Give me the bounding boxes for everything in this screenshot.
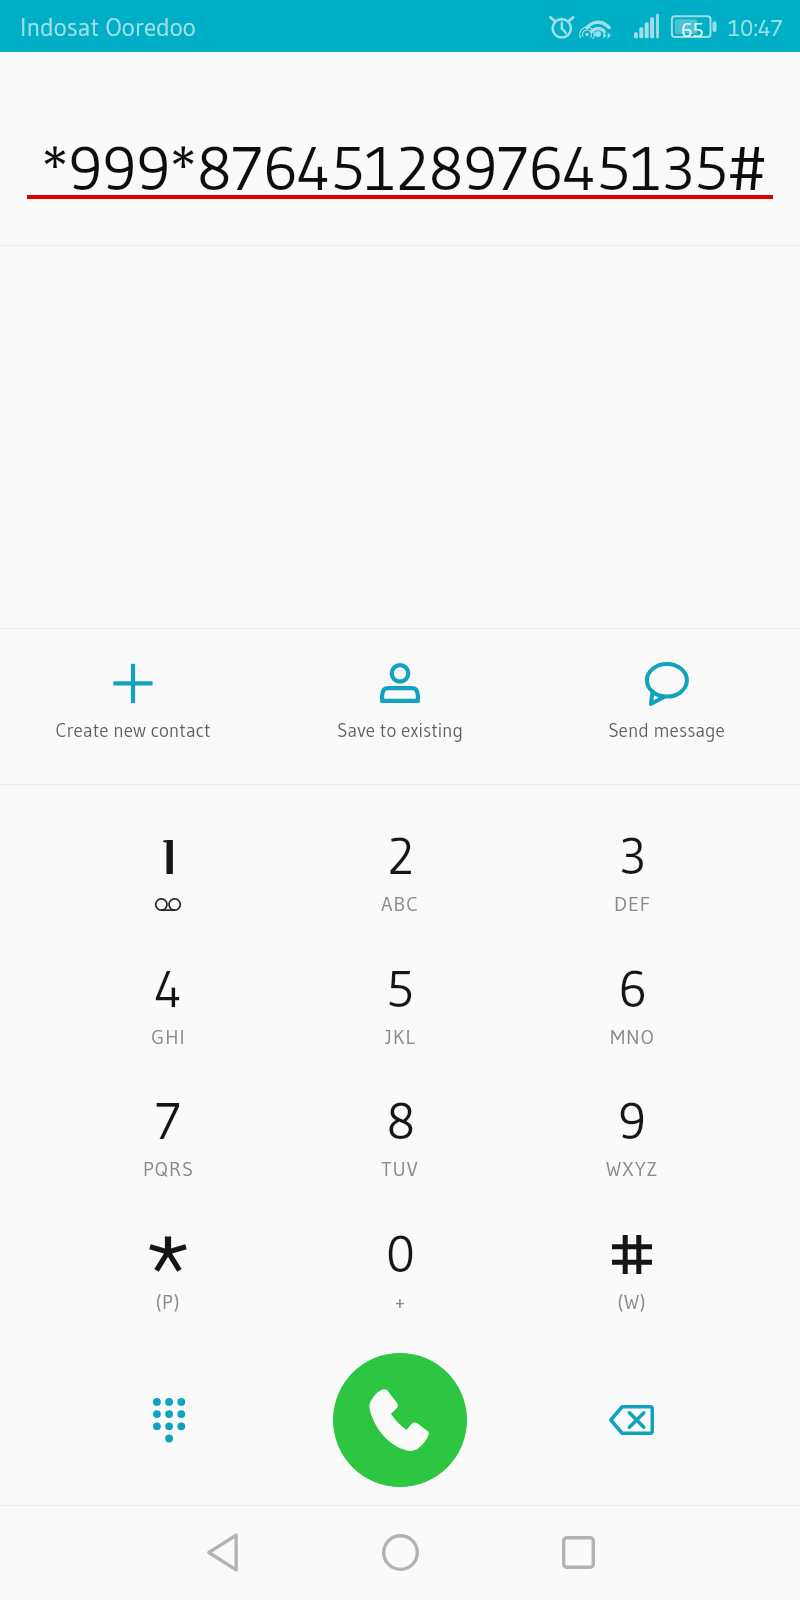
staticText: DEF <box>614 892 651 917</box>
button[interactable]: 2 <box>284 815 516 941</box>
staticText: 9 <box>618 1090 646 1152</box>
staticText: *999*8764512897645135# <box>42 131 766 206</box>
staticText: 4 <box>155 958 182 1020</box>
button[interactable]: Back <box>187 1517 257 1587</box>
button[interactable]: 4 <box>52 948 284 1074</box>
staticText: Send message <box>608 719 725 742</box>
button[interactable]: 6 <box>516 948 748 1074</box>
button[interactable]: (P) <box>52 1213 284 1339</box>
button[interactable]: 0 <box>284 1213 516 1339</box>
button[interactable]: 8 <box>284 1080 516 1206</box>
button[interactable]: 7 <box>52 1080 284 1206</box>
staticText: 2 <box>387 825 414 887</box>
staticText: Save to existing <box>337 719 463 742</box>
staticText: JKL <box>385 1025 416 1050</box>
button[interactable]: 5 <box>284 948 516 1074</box>
staticText: (P) <box>155 1290 181 1315</box>
staticText: MNO <box>610 1025 655 1050</box>
staticText: TUV <box>381 1157 419 1182</box>
staticText: WXYZ <box>606 1157 658 1182</box>
button[interactable]: (W) <box>516 1213 748 1339</box>
staticText: (W) <box>617 1290 647 1315</box>
staticText: GHI <box>151 1025 186 1050</box>
staticText: ABC <box>381 892 419 917</box>
staticText: 7 <box>155 1090 181 1152</box>
staticText: + <box>395 1290 406 1315</box>
staticText: 3 <box>619 825 646 887</box>
button[interactable]: Send message <box>533 629 800 784</box>
staticText: 10:47 <box>728 14 783 42</box>
button[interactable]: Show dialpad <box>127 1378 211 1462</box>
staticText: 6 <box>618 958 647 1020</box>
button[interactable]: Delete <box>589 1378 673 1462</box>
button[interactable]: Home <box>365 1517 435 1587</box>
staticText: Indosat Ooredoo <box>20 12 196 43</box>
staticText: 5 <box>386 958 414 1020</box>
staticText: PQRS <box>143 1157 194 1182</box>
button[interactable]: Create new contact <box>0 629 266 784</box>
button[interactable]: Recent apps <box>543 1517 613 1587</box>
button[interactable]: 3 <box>516 815 748 941</box>
staticText: Create new contact <box>55 719 211 742</box>
button[interactable]: Call <box>333 1353 467 1487</box>
staticText: 8 <box>386 1090 415 1152</box>
staticText: 0 <box>386 1223 415 1285</box>
button[interactable] <box>52 815 284 941</box>
button[interactable]: Save to existing <box>266 629 533 784</box>
button[interactable]: 9 <box>516 1080 748 1206</box>
staticText: 65 <box>681 18 704 43</box>
